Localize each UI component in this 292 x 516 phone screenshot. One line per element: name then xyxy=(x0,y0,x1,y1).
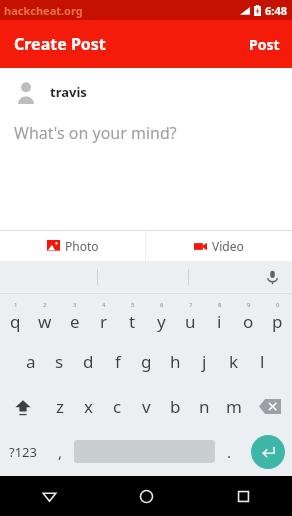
button[interactable]: c xyxy=(103,384,132,429)
button[interactable]: h xyxy=(161,339,190,384)
button[interactable]: Enter xyxy=(251,435,285,469)
button[interactable]: 2 xyxy=(30,294,60,339)
button[interactable]: k xyxy=(219,339,248,384)
staticText: c xyxy=(113,395,122,418)
button[interactable]: 1 xyxy=(0,294,30,339)
staticText: o xyxy=(243,310,254,333)
staticText: l xyxy=(260,350,265,373)
button[interactable]: 3 xyxy=(60,294,89,339)
staticText: z xyxy=(56,395,64,418)
button[interactable]: Post xyxy=(239,27,292,62)
staticText: 2 xyxy=(43,301,47,309)
staticText: . xyxy=(227,442,232,462)
staticText: a xyxy=(26,350,36,373)
staticText: Create Post xyxy=(14,33,106,55)
staticText: w xyxy=(38,310,52,333)
button[interactable]: Shift xyxy=(0,384,45,429)
button[interactable]: Home xyxy=(98,476,195,516)
staticText: hackcheat.org xyxy=(4,3,83,18)
staticText: Video xyxy=(212,238,244,254)
staticText: 6:48 xyxy=(265,3,287,18)
button[interactable]: ?123 xyxy=(0,429,46,474)
staticText: 5 xyxy=(131,301,135,309)
staticText: t xyxy=(129,310,136,333)
button[interactable]: Voice input xyxy=(252,261,292,293)
staticText: n xyxy=(199,395,210,418)
button[interactable]: 7 xyxy=(176,294,205,339)
staticText: i xyxy=(217,310,222,333)
button[interactable]: d xyxy=(74,339,103,384)
button[interactable]: . xyxy=(215,429,243,474)
staticText: u xyxy=(185,310,196,333)
button[interactable]: Create Post xyxy=(0,25,114,63)
button[interactable]: 9 xyxy=(234,294,263,339)
button[interactable]: Photo xyxy=(0,231,145,261)
button[interactable]: g xyxy=(132,339,161,384)
button[interactable]: z xyxy=(45,384,74,429)
staticText: 1 xyxy=(14,301,18,309)
button[interactable]: x xyxy=(74,384,103,429)
staticText: p xyxy=(272,310,283,333)
button[interactable]: Video xyxy=(146,231,292,261)
staticText: s xyxy=(55,350,64,373)
button[interactable]: j xyxy=(190,339,219,384)
button[interactable]: 5 xyxy=(118,294,147,339)
staticText: 4 xyxy=(102,301,106,309)
staticText: v xyxy=(142,395,151,418)
staticText: 3 xyxy=(73,301,77,309)
staticText: y xyxy=(157,310,166,333)
staticText: ?123 xyxy=(9,443,37,461)
staticText: q xyxy=(10,310,21,333)
staticText: g xyxy=(141,350,152,373)
staticText: travis xyxy=(50,83,87,101)
staticText: r xyxy=(100,310,108,333)
staticText: b xyxy=(170,395,181,418)
button[interactable]: 4 xyxy=(89,294,118,339)
button[interactable]: Recents xyxy=(195,476,292,516)
button[interactable]: s xyxy=(45,339,74,384)
staticText: d xyxy=(83,350,94,373)
staticText: 8 xyxy=(218,301,222,309)
button[interactable]: v xyxy=(132,384,161,429)
staticText: x xyxy=(84,395,93,418)
button[interactable]: f xyxy=(103,339,132,384)
staticText: 7 xyxy=(189,301,193,309)
staticText: j xyxy=(202,350,207,373)
button[interactable]: a xyxy=(16,339,45,384)
button[interactable]: Backspace xyxy=(248,384,292,429)
button[interactable]: m xyxy=(219,384,248,429)
button[interactable]: What's on your mind? xyxy=(0,104,292,230)
staticText: k xyxy=(229,350,239,373)
button[interactable]: l xyxy=(248,339,277,384)
button[interactable]: 6 xyxy=(147,294,176,339)
button[interactable]: 0 xyxy=(263,294,292,339)
staticText: h xyxy=(170,350,181,373)
staticText: m xyxy=(226,395,242,418)
button[interactable]: 8 xyxy=(205,294,234,339)
button[interactable]: Back xyxy=(0,476,98,516)
staticText: e xyxy=(70,310,80,333)
button[interactable]: n xyxy=(190,384,219,429)
button[interactable]: b xyxy=(161,384,190,429)
button[interactable]: , xyxy=(46,429,74,474)
staticText: What's on your mind? xyxy=(14,122,177,144)
staticText: 9 xyxy=(247,301,251,309)
staticText: 0 xyxy=(276,301,280,309)
staticText: f xyxy=(115,350,121,373)
staticText: Post xyxy=(249,35,280,54)
staticText: , xyxy=(58,442,63,462)
staticText: Photo xyxy=(65,238,99,254)
staticText: 6 xyxy=(160,301,164,309)
